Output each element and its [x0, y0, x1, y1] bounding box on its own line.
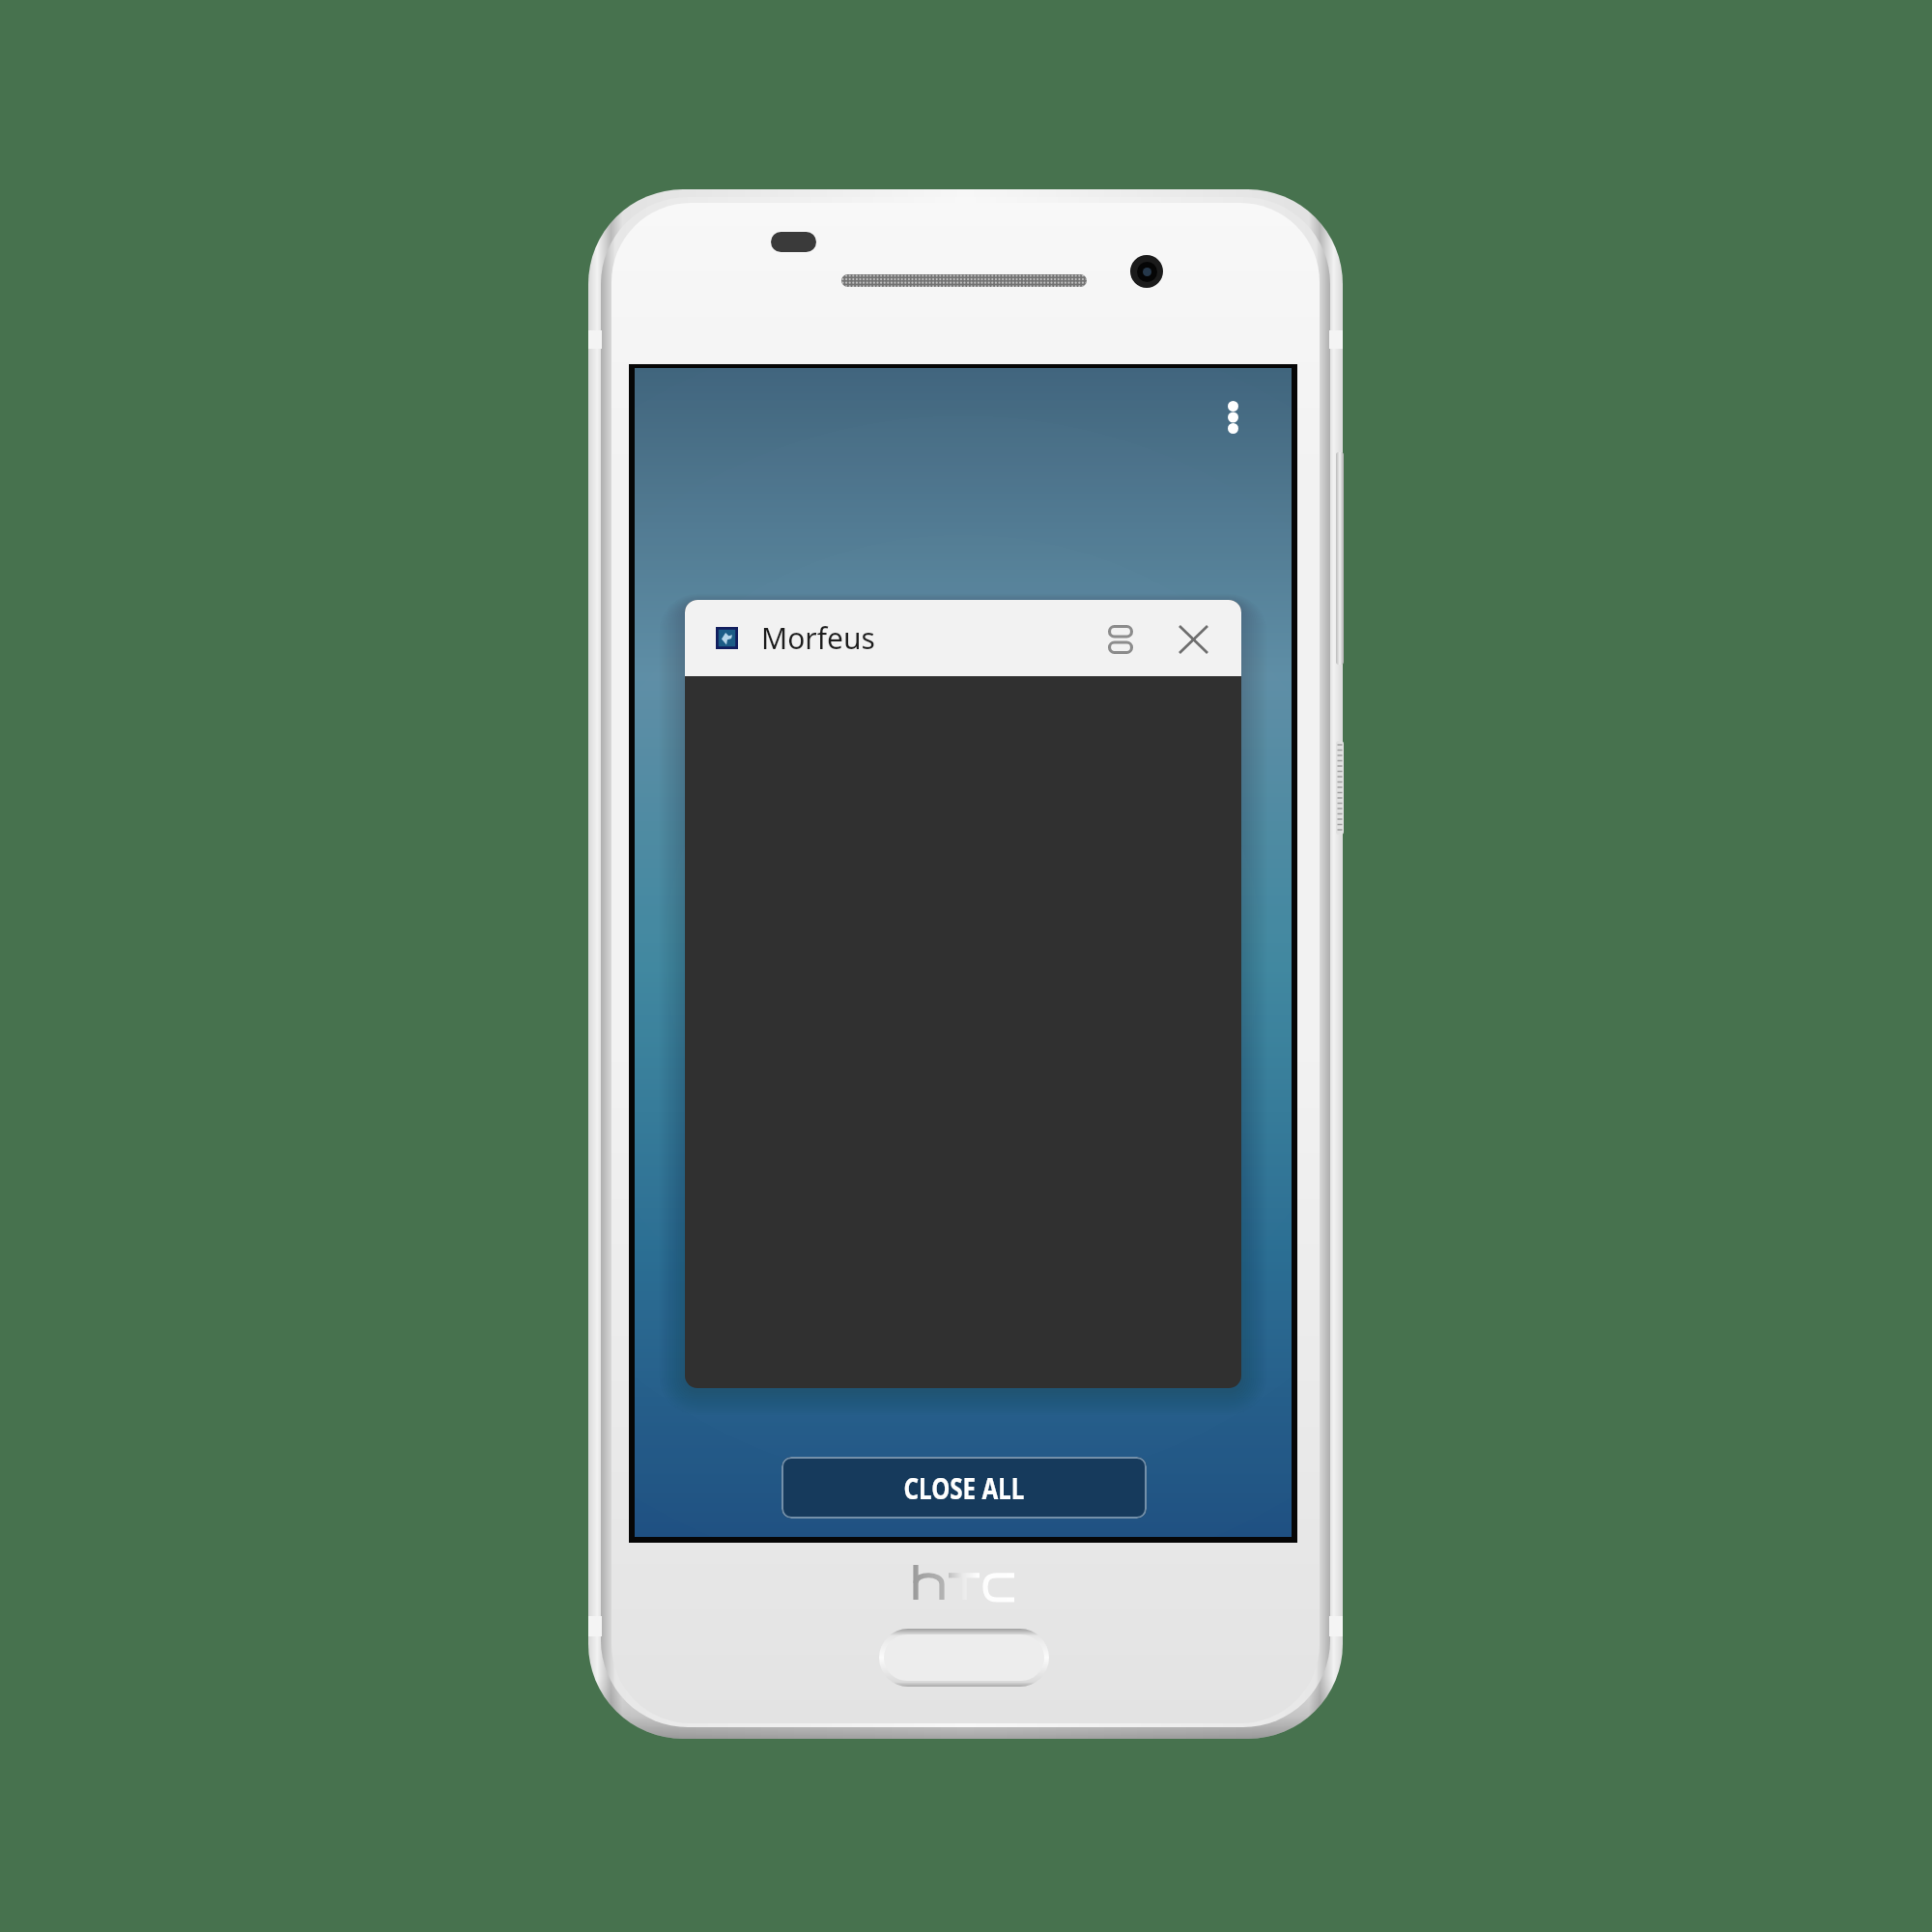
button[interactable]: CLOSE ALL: [781, 1457, 1147, 1519]
staticText: CLOSE ALL: [904, 1467, 1024, 1508]
button[interactable]: Morfeus: [685, 600, 1241, 1388]
button[interactable]: Home: [879, 1629, 1049, 1687]
button[interactable]: Split screen: [1081, 606, 1160, 673]
staticText: Morfeus: [761, 618, 875, 658]
button[interactable]: More options: [1207, 384, 1258, 450]
button[interactable]: Close: [1159, 606, 1228, 673]
